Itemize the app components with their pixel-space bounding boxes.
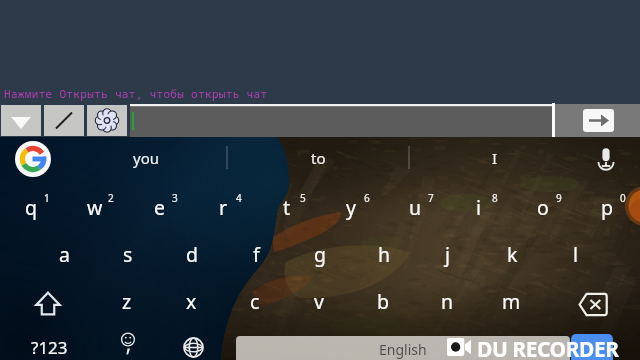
button[interactable]: Enter — [571, 334, 613, 360]
button[interactable]: t — [255, 183, 319, 231]
staticText: s — [123, 241, 133, 268]
staticText: x — [186, 288, 197, 315]
button[interactable]: p — [575, 183, 639, 231]
button[interactable]: a — [32, 230, 96, 278]
button[interactable]: Send — [555, 104, 640, 137]
button[interactable]: Change language — [173, 334, 213, 360]
staticText: l — [573, 241, 579, 268]
staticText: b — [377, 288, 389, 315]
staticText: 0 — [620, 191, 626, 205]
staticText: q — [25, 194, 37, 221]
button[interactable]: u — [383, 183, 447, 231]
button[interactable]: c — [223, 277, 287, 325]
button[interactable]: j — [416, 230, 480, 278]
button[interactable]: Draw — [44, 105, 84, 136]
staticText: d — [186, 241, 198, 268]
button[interactable]: v — [287, 277, 351, 325]
button[interactable]: l — [544, 230, 608, 278]
button[interactable]: f — [224, 230, 288, 278]
staticText: g — [314, 241, 326, 268]
button[interactable]: o — [511, 183, 575, 231]
button[interactable]: h — [352, 230, 416, 278]
button[interactable]: Shift — [16, 279, 80, 327]
staticText: a — [59, 241, 70, 268]
staticText: m — [502, 288, 521, 315]
button[interactable]: y — [319, 183, 383, 231]
staticText: i — [476, 194, 482, 221]
button[interactable]: Backspace — [561, 280, 625, 328]
staticText: e — [154, 194, 165, 221]
staticText: 3 — [172, 191, 178, 205]
button[interactable]: i — [447, 183, 511, 231]
staticText: j — [445, 241, 451, 268]
staticText: v — [314, 288, 324, 315]
staticText: I — [492, 148, 498, 168]
staticText: 4 — [236, 191, 242, 205]
button[interactable]: s — [96, 230, 160, 278]
staticText: you — [133, 148, 159, 168]
staticText: English — [379, 340, 427, 359]
button[interactable]: z — [95, 277, 159, 325]
staticText: w — [87, 194, 103, 221]
button[interactable]: r — [191, 183, 255, 231]
staticText: 5 — [300, 191, 306, 205]
button[interactable]: Emoji — [108, 333, 148, 360]
button[interactable]: m — [479, 277, 543, 325]
staticText: y — [346, 194, 356, 221]
staticText: 1 — [44, 191, 50, 205]
staticText: Нажмите Открыть чат, чтобы открыть чат — [4, 86, 268, 101]
button[interactable] — [130, 104, 552, 137]
button[interactable]: e — [127, 183, 191, 231]
button[interactable]: b — [351, 277, 415, 325]
staticText: u — [409, 194, 422, 221]
button[interactable]: d — [160, 230, 224, 278]
button[interactable]: Collapse — [1, 105, 41, 136]
button[interactable]: English — [236, 336, 570, 360]
button[interactable]: ?123 — [19, 333, 79, 360]
staticText: 8 — [492, 191, 498, 205]
button[interactable]: Settings — [87, 105, 127, 136]
staticText: h — [378, 241, 391, 268]
button[interactable]: to — [228, 137, 408, 178]
button[interactable]: w — [63, 183, 127, 231]
staticText: z — [122, 288, 132, 315]
staticText: f — [253, 241, 260, 268]
staticText: n — [441, 288, 454, 315]
staticText: ?123 — [31, 336, 68, 359]
staticText: o — [537, 194, 549, 221]
staticText: DU RECORDER — [477, 335, 619, 360]
button[interactable]: g — [288, 230, 352, 278]
button[interactable]: n — [415, 277, 479, 325]
staticText: 2 — [108, 191, 114, 205]
button[interactable]: q — [0, 183, 63, 231]
button[interactable]: I — [410, 137, 580, 178]
button[interactable]: x — [159, 277, 223, 325]
staticText: c — [250, 288, 260, 315]
button[interactable]: k — [480, 230, 544, 278]
staticText: t — [283, 194, 291, 221]
staticText: 7 — [428, 191, 434, 205]
staticText: k — [507, 241, 518, 268]
staticText: 9 — [556, 191, 562, 205]
staticText: p — [601, 194, 613, 221]
staticText: r — [219, 194, 228, 221]
button[interactable]: you — [66, 137, 226, 178]
staticText: 6 — [364, 191, 370, 205]
staticText: to — [311, 148, 326, 168]
button[interactable]: Google — [15, 141, 51, 177]
button[interactable]: Voice input — [593, 145, 619, 171]
